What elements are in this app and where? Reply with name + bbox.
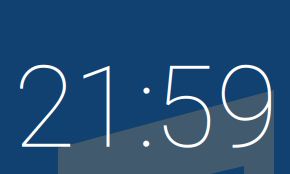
staticText: 5 bbox=[153, 42, 215, 174]
staticText: : bbox=[136, 42, 156, 174]
staticText: 2 bbox=[13, 42, 75, 174]
staticText: 1 bbox=[73, 42, 135, 174]
staticText: 9 bbox=[216, 42, 278, 174]
